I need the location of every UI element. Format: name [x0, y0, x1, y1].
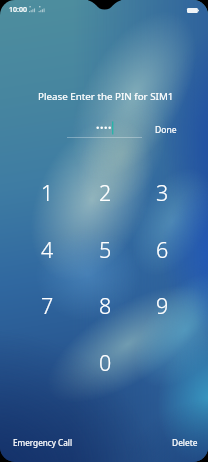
staticText: 9 [156, 291, 169, 320]
staticText: 2 [99, 178, 112, 207]
button[interactable]: Done [155, 124, 177, 136]
staticText: 10:00 [9, 5, 27, 15]
button[interactable]: Delete [172, 437, 198, 448]
button[interactable]: 2 [77, 166, 133, 218]
button[interactable]: 7 [19, 279, 75, 331]
staticText: 7 [41, 291, 54, 320]
staticText: 8 [99, 291, 112, 320]
button[interactable]: 3 [134, 166, 190, 218]
button[interactable]: 9 [134, 279, 190, 331]
staticText: 5 [99, 235, 112, 264]
staticText: 4 [41, 235, 54, 264]
button[interactable]: 5 [77, 223, 133, 275]
staticText: 0 [99, 348, 112, 377]
button[interactable]: 0 [77, 336, 133, 388]
staticText: 3 [156, 178, 169, 207]
button[interactable]: 4 [19, 223, 75, 275]
button[interactable]: 6 [134, 223, 190, 275]
button[interactable]: 8 [77, 279, 133, 331]
button[interactable] [67, 118, 142, 140]
staticText: 1 [41, 178, 54, 207]
staticText: 6 [156, 235, 169, 264]
button[interactable]: 1 [19, 166, 75, 218]
staticText: Please Enter the PIN for SIM1 [38, 90, 174, 103]
button[interactable]: Emergency Call [13, 437, 73, 448]
